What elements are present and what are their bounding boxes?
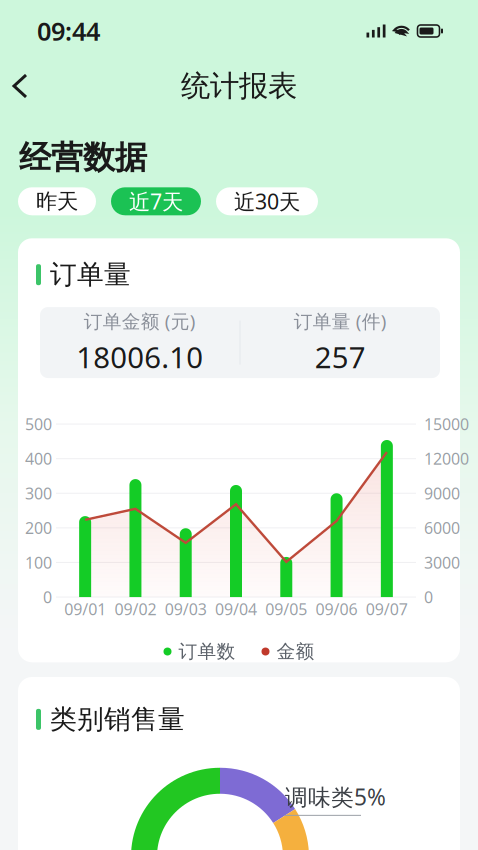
button[interactable]: 近7天: [111, 187, 201, 215]
staticText: 0: [43, 586, 52, 608]
staticText: 统计报表: [181, 68, 297, 104]
staticText: 3000: [424, 552, 460, 573]
staticText: 18006.10: [76, 337, 203, 376]
staticText: 近30天: [234, 187, 300, 215]
staticText: 09/02: [114, 598, 156, 620]
staticText: 0: [424, 586, 433, 608]
button[interactable]: 昨天: [18, 187, 96, 215]
staticText: 12000: [424, 448, 469, 469]
staticText: 金额: [276, 640, 314, 663]
staticText: 09:44: [37, 14, 100, 48]
staticText: 500: [25, 413, 52, 435]
staticText: 昨天: [36, 188, 78, 214]
staticText: 调味类5%: [285, 782, 386, 812]
staticText: 类别销售量: [50, 703, 185, 736]
staticText: 09/06: [316, 598, 358, 620]
staticText: 300: [25, 483, 52, 504]
staticText: 100: [25, 552, 52, 573]
button[interactable]: 返回: [0, 65, 40, 107]
button[interactable]: 近30天: [216, 187, 318, 215]
staticText: 6000: [424, 517, 460, 538]
staticText: 订单量 (件): [294, 309, 387, 333]
staticText: 400: [25, 448, 52, 469]
staticText: 15000: [424, 413, 469, 435]
staticText: 09/05: [265, 598, 307, 620]
staticText: 257: [315, 337, 366, 376]
staticText: 09/04: [215, 598, 257, 620]
staticText: 订单金额 (元): [84, 309, 196, 333]
staticText: 09/03: [165, 598, 207, 620]
staticText: 09/01: [64, 598, 106, 620]
staticText: 订单数: [178, 640, 235, 663]
staticText: 近7天: [129, 187, 183, 215]
staticText: 09/07: [366, 598, 408, 620]
staticText: 9000: [424, 483, 460, 504]
staticText: 经营数据: [19, 138, 147, 177]
staticText: 200: [25, 517, 52, 538]
staticText: 订单量: [50, 258, 131, 291]
